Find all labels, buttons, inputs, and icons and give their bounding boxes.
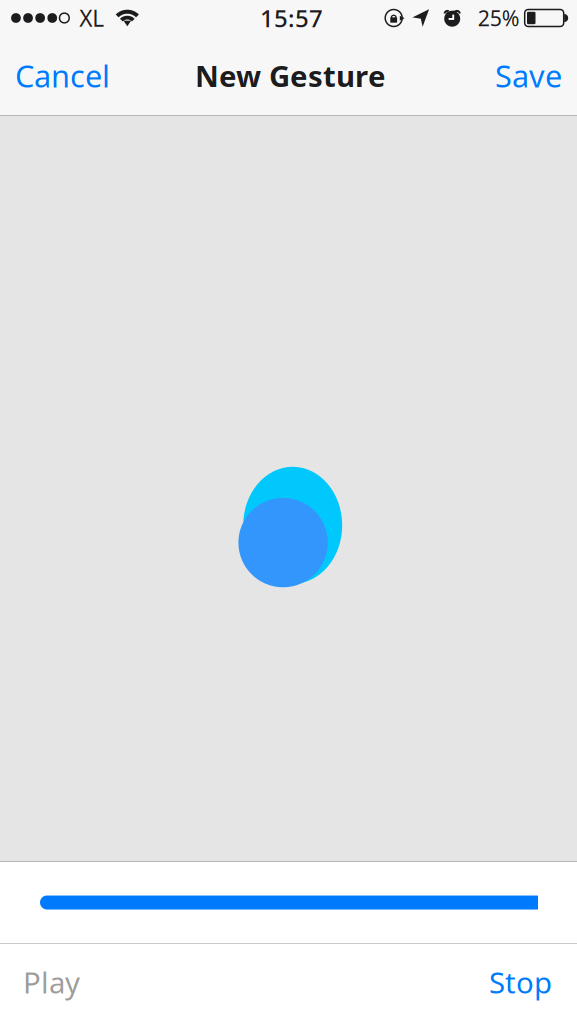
staticText: XL xyxy=(79,3,104,33)
staticText: 15:57 xyxy=(260,2,323,34)
staticText: Cancel xyxy=(15,55,110,96)
staticText: Stop xyxy=(489,962,552,1001)
button[interactable]: Save xyxy=(481,40,577,115)
staticText: 25% xyxy=(478,4,520,32)
staticText: Save xyxy=(495,55,562,96)
staticText: New Gesture xyxy=(195,56,386,95)
staticText: Play xyxy=(23,962,80,1001)
button[interactable]: Cancel xyxy=(0,40,124,115)
button[interactable]: Play xyxy=(0,944,102,1024)
button[interactable]: Stop xyxy=(467,944,577,1024)
